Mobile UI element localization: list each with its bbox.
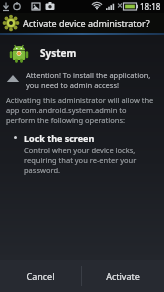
staticText: Attention! To install the application, y… [26,70,156,90]
button[interactable]: Cancel [0,260,81,292]
staticText: Cancel [26,270,55,282]
staticText: System [40,46,77,60]
staticText: Control when your device locks, requirin… [24,145,156,175]
staticText: Activate [106,270,140,282]
staticText: Lock the screen [24,132,95,144]
staticText: Activating this administrator will allow… [6,95,156,125]
button[interactable]: Activate [82,260,164,292]
staticText: Activate device administrator? [23,17,150,29]
staticText: 18:18 [140,1,161,12]
